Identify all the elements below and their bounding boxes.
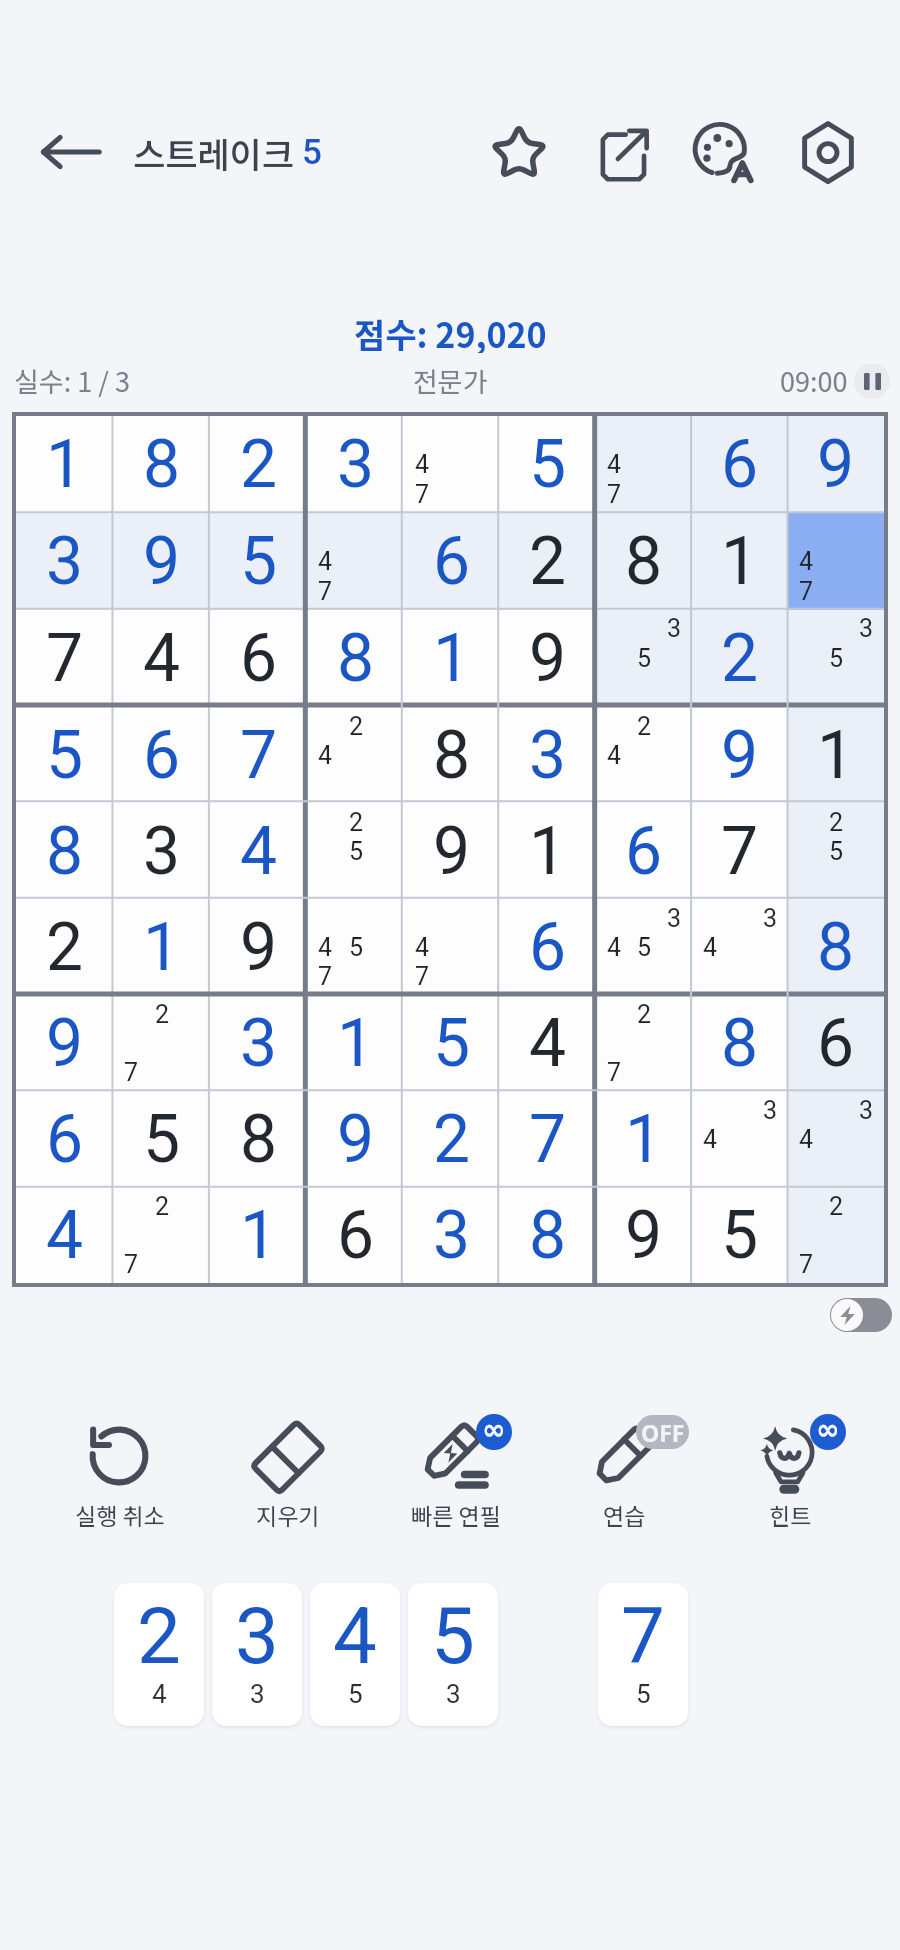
button[interactable]: 6 (788, 995, 884, 1091)
button[interactable]: 6 (16, 1091, 113, 1187)
button[interactable]: 1 (307, 995, 404, 1091)
button[interactable]: 1 (596, 1091, 692, 1187)
staticText: 4 (415, 933, 430, 962)
button[interactable]: 4 (788, 513, 884, 610)
button[interactable]: 2 (788, 803, 884, 899)
button[interactable]: 5 (16, 707, 113, 803)
button[interactable]: 3 (210, 995, 307, 1091)
button[interactable]: 7 (210, 707, 307, 803)
button[interactable]: Theme (685, 112, 765, 192)
button[interactable]: 9 (788, 416, 884, 513)
button[interactable]: 2 (692, 610, 788, 707)
button[interactable]: 9 (596, 1187, 692, 1283)
staticText: 4 (415, 450, 430, 479)
button[interactable]: ∞ (710, 1414, 870, 1544)
button[interactable]: 4 (210, 803, 307, 899)
button[interactable]: 8 (16, 803, 113, 899)
button[interactable]: 5 (500, 416, 596, 513)
button[interactable]: Share (582, 112, 662, 192)
button[interactable]: OFF (544, 1414, 704, 1544)
button[interactable]: 9 (113, 513, 210, 610)
button[interactable]: 3 (113, 803, 210, 899)
button[interactable]: 7 (692, 803, 788, 899)
button[interactable]: 4 (113, 610, 210, 707)
button[interactable]: 6 (500, 899, 596, 995)
button[interactable]: 9 (307, 1091, 404, 1187)
button[interactable]: 9 (500, 610, 596, 707)
button[interactable]: 6 (692, 416, 788, 513)
button[interactable]: 3 (596, 899, 692, 995)
button[interactable]: 9 (16, 995, 113, 1091)
button[interactable]: 3 (307, 416, 404, 513)
button[interactable]: 실행 취소 (40, 1414, 200, 1544)
button[interactable]: 2 (788, 1187, 884, 1283)
button[interactable]: 4 (404, 899, 500, 995)
button[interactable]: 5 (408, 1583, 498, 1726)
button[interactable]: 8 (404, 707, 500, 803)
button[interactable]: 8 (500, 1187, 596, 1283)
button[interactable]: 5 (210, 513, 307, 610)
button[interactable]: 3 (692, 899, 788, 995)
button[interactable]: 2 (16, 899, 113, 995)
button[interactable]: 3 (212, 1583, 302, 1726)
button[interactable]: 5 (692, 1187, 788, 1283)
button[interactable]: 8 (596, 513, 692, 610)
button[interactable]: 2 (596, 707, 692, 803)
button[interactable]: Back (26, 112, 116, 192)
button[interactable]: 4 (307, 899, 404, 995)
button[interactable]: 6 (307, 1187, 404, 1283)
button[interactable]: Auto check (830, 1298, 892, 1332)
button[interactable]: 4 (16, 1187, 113, 1283)
button[interactable]: 4 (307, 513, 404, 610)
button[interactable]: 9 (692, 707, 788, 803)
button[interactable]: 6 (113, 707, 210, 803)
button[interactable]: 8 (692, 995, 788, 1091)
button[interactable]: ∞ (376, 1414, 536, 1544)
button[interactable]: 1 (16, 416, 113, 513)
button[interactable]: 3 (788, 610, 884, 707)
button[interactable]: 6 (210, 610, 307, 707)
button[interactable]: 지우기 (208, 1414, 368, 1544)
button[interactable]: 5 (404, 995, 500, 1091)
button[interactable]: Favorite (479, 112, 559, 192)
button[interactable]: 6 (596, 803, 692, 899)
button[interactable]: 3 (692, 1091, 788, 1187)
button[interactable]: 1 (113, 899, 210, 995)
button[interactable]: 9 (404, 803, 500, 899)
button[interactable]: 5 (113, 1091, 210, 1187)
button[interactable]: 3 (788, 1091, 884, 1187)
button[interactable]: 4 (500, 995, 596, 1091)
button[interactable]: 2 (113, 1187, 210, 1283)
button[interactable]: Settings (788, 112, 868, 192)
button[interactable]: 3 (404, 1187, 500, 1283)
button[interactable]: 7 (598, 1583, 688, 1726)
button[interactable]: 6 (404, 513, 500, 610)
button[interactable]: 7 (500, 1091, 596, 1187)
button[interactable]: 8 (788, 899, 884, 995)
button[interactable]: 2 (210, 416, 307, 513)
button[interactable]: 3 (16, 513, 113, 610)
button[interactable]: 2 (307, 803, 404, 899)
button[interactable]: 2 (596, 995, 692, 1091)
button[interactable]: 2 (500, 513, 596, 610)
button[interactable]: 1 (788, 707, 884, 803)
button[interactable]: 4 (310, 1583, 400, 1726)
button[interactable]: 8 (307, 610, 404, 707)
button[interactable]: Pause (854, 363, 890, 399)
button[interactable]: 3 (500, 707, 596, 803)
button[interactable]: 4 (404, 416, 500, 513)
button[interactable]: 1 (210, 1187, 307, 1283)
button[interactable]: 2 (113, 995, 210, 1091)
button[interactable]: 9 (210, 899, 307, 995)
button[interactable]: 1 (500, 803, 596, 899)
button[interactable]: 2 (307, 707, 404, 803)
button[interactable]: 1 (404, 610, 500, 707)
button[interactable]: 8 (113, 416, 210, 513)
button[interactable]: 7 (16, 610, 113, 707)
button[interactable]: 2 (404, 1091, 500, 1187)
button[interactable]: 4 (596, 416, 692, 513)
button[interactable]: 2 (114, 1583, 204, 1726)
button[interactable]: 8 (210, 1091, 307, 1187)
button[interactable]: 3 (596, 610, 692, 707)
button[interactable]: 1 (692, 513, 788, 610)
